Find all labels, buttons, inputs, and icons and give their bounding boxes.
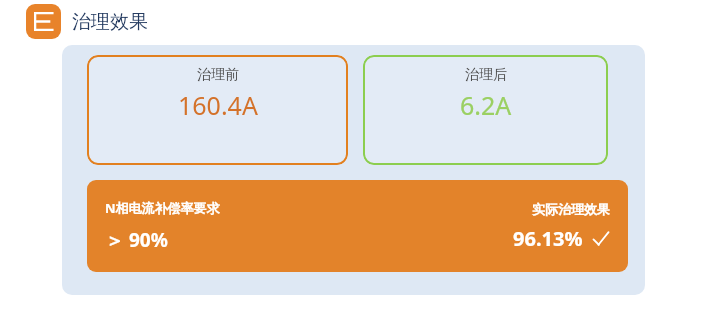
staticText: ＞ 90%	[105, 227, 168, 253]
staticText: N相电流补偿率要求	[105, 199, 220, 217]
staticText: 治理效果	[72, 10, 148, 34]
staticText: 160.4A	[178, 88, 258, 122]
staticText: 6.2A	[460, 88, 512, 122]
staticText: 治理后	[465, 66, 507, 84]
button[interactable]: 治理效果	[26, 4, 148, 39]
other: 达标	[592, 230, 610, 248]
button[interactable]: 治理后	[363, 55, 608, 165]
staticText: 96.13%	[513, 225, 583, 252]
button[interactable]: 治理前	[87, 55, 348, 165]
staticText: 治理前	[197, 66, 239, 84]
button[interactable]: N相电流补偿率要求	[87, 180, 628, 272]
other: 治理效果	[26, 4, 61, 39]
staticText: 实际治理效果	[532, 201, 610, 217]
